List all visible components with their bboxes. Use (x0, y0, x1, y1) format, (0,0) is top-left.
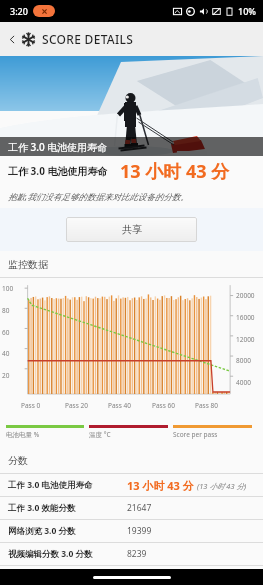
staticText: 8000 (236, 356, 251, 365)
staticText: 20000 (236, 291, 255, 300)
staticText: Pass 20 (65, 401, 88, 410)
staticText: 100 (2, 284, 14, 293)
button[interactable]: 共享 (66, 217, 197, 242)
staticText: 8239 (127, 548, 147, 560)
staticText: 工作 3.0 电池使用寿命 (8, 164, 108, 178)
staticText: 视频编辑分数 3.0 分数 (8, 548, 127, 560)
button[interactable]: Back (3, 30, 21, 48)
button[interactable]: 视频编辑分数 3.0 分数 (0, 543, 263, 565)
staticText: 12000 (236, 335, 255, 344)
staticText: Score per pass (173, 430, 218, 439)
staticText: 80 (2, 306, 10, 315)
staticText: 工作 3.0 电池使用寿命 (8, 140, 108, 154)
staticText: 抱歉,我们没有足够的数据来对比此设备的分数。 (8, 191, 189, 203)
staticText: 网络浏览 3.0 分数 (8, 525, 127, 537)
staticText: 工作 3.0 电池使用寿命 (8, 479, 127, 491)
staticText: Pass 40 (108, 401, 131, 410)
staticText: Pass 80 (195, 401, 218, 410)
button[interactable]: 网络浏览 3.0 分数 (0, 520, 263, 542)
button[interactable]: 工作 3.0 效能分数 (0, 497, 263, 519)
staticText: Pass 0 (21, 401, 41, 410)
staticText: 工作 3.0 效能分数 (8, 502, 127, 514)
staticText: 温度 °C (89, 430, 111, 439)
staticText: 13 小时 43 分 (127, 478, 194, 493)
staticText: 60 (2, 328, 10, 337)
staticText: Pass 60 (152, 401, 175, 410)
staticText: 10% (238, 5, 256, 17)
staticText: 分数 (8, 454, 28, 467)
staticText: 3:20 (10, 5, 28, 17)
staticText: 监控数据 (8, 258, 48, 271)
staticText: 21647 (127, 502, 152, 514)
staticText: 20 (2, 371, 10, 380)
staticText: SCORE DETAILS (42, 31, 134, 47)
staticText: 16000 (236, 313, 255, 322)
staticText: 19399 (127, 525, 152, 537)
staticText: 13 小时 43 分 (120, 159, 230, 184)
staticText: 共享 (122, 223, 142, 236)
staticText: (13 小时 43 分) (197, 481, 247, 491)
staticText: 电池电量 % (6, 430, 40, 439)
button[interactable]: 工作 3.0 电池使用寿命 (0, 474, 263, 496)
staticText: 4000 (236, 378, 251, 387)
staticText: 40 (2, 349, 10, 358)
